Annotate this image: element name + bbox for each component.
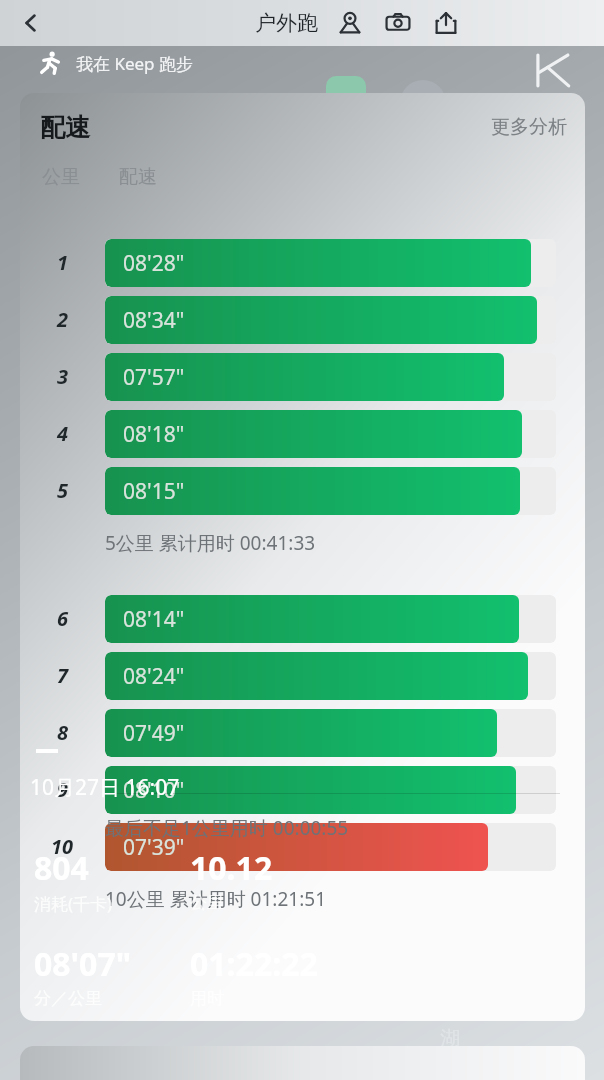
button[interactable]: 5 bbox=[20, 462, 585, 519]
staticText: 08'28" bbox=[123, 249, 185, 278]
button[interactable]: Back bbox=[8, 0, 54, 46]
staticText: 10公里 累计用时 01:21:51 bbox=[105, 886, 327, 912]
staticText: 10.12 bbox=[190, 846, 273, 890]
staticText: 07'57" bbox=[123, 363, 185, 392]
staticText: 户外跑 bbox=[255, 10, 318, 36]
staticText: 我在 Keep 跑步 bbox=[76, 52, 193, 75]
button[interactable]: Map bbox=[330, 3, 370, 43]
staticText: 湖 bbox=[440, 1026, 460, 1051]
staticText: 更多分析 bbox=[491, 115, 567, 139]
staticText: 配速 bbox=[40, 112, 90, 143]
button[interactable]: 7 bbox=[20, 647, 585, 704]
staticText: 08'07" bbox=[34, 942, 132, 986]
staticText: 分／公里 bbox=[34, 988, 102, 1009]
button[interactable]: 10 bbox=[20, 818, 585, 875]
staticText: 4 bbox=[57, 420, 69, 447]
button[interactable]: Camera bbox=[378, 3, 418, 43]
staticText: 公里 bbox=[42, 165, 80, 189]
button[interactable]: 更多分析 bbox=[483, 109, 575, 145]
staticText: 9 bbox=[57, 776, 69, 803]
button[interactable]: 3 bbox=[20, 348, 585, 405]
staticText: 5公里 累计用时 00:41:33 bbox=[105, 530, 316, 556]
staticText: 消耗(千卡) bbox=[34, 892, 113, 915]
staticText: 1 bbox=[57, 249, 69, 276]
staticText: 07'49" bbox=[123, 719, 185, 748]
staticText: 08'34" bbox=[123, 306, 185, 335]
staticText: 8 bbox=[57, 719, 69, 746]
staticText: 配速 bbox=[119, 165, 157, 189]
button[interactable]: 8 bbox=[20, 704, 585, 761]
staticText: 公里 bbox=[190, 892, 224, 913]
staticText: 10月27日 16:07 bbox=[30, 773, 180, 802]
staticText: 10 bbox=[51, 833, 74, 860]
button[interactable]: 1 bbox=[20, 234, 585, 291]
staticText: 07'39" bbox=[123, 833, 185, 862]
staticText: 804 bbox=[34, 846, 89, 890]
button[interactable]: Share bbox=[426, 3, 466, 43]
button[interactable]: 2 bbox=[20, 291, 585, 348]
staticText: 08'15" bbox=[123, 477, 185, 506]
staticText: 最后不足1公里用时 00:00:55 bbox=[105, 815, 349, 841]
staticText: 08'24" bbox=[123, 662, 185, 691]
staticText: 3 bbox=[57, 363, 69, 390]
staticText: 08'18" bbox=[123, 420, 185, 449]
staticText: 5 bbox=[57, 477, 69, 504]
button[interactable]: 9 bbox=[20, 761, 585, 818]
button[interactable]: 4 bbox=[20, 405, 585, 462]
staticText: 2 bbox=[57, 306, 69, 333]
staticText: 08'14" bbox=[123, 605, 185, 634]
staticText: 7 bbox=[57, 662, 69, 689]
staticText: 08'10" bbox=[123, 776, 185, 805]
button[interactable]: 6 bbox=[20, 590, 585, 647]
staticText: 6 bbox=[57, 605, 69, 632]
